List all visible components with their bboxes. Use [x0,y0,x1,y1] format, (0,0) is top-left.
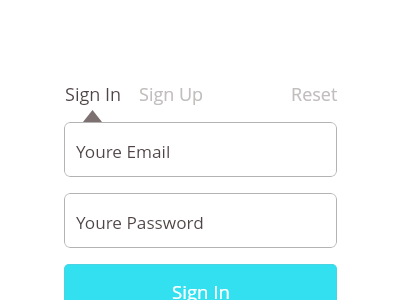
button[interactable]: Sign In [64,264,337,300]
button[interactable]: Sign In [65,82,122,107]
button[interactable]: Sign Up [139,82,204,107]
staticText: Sign In [172,279,230,300]
button[interactable]: Reset [291,82,338,107]
staticText: Youre Email [76,140,171,163]
staticText: Youre Password [76,211,204,234]
button[interactable]: Youre Password [64,193,337,248]
button[interactable]: Youre Email [64,122,337,177]
other: Selected tab indicator [83,110,102,122]
